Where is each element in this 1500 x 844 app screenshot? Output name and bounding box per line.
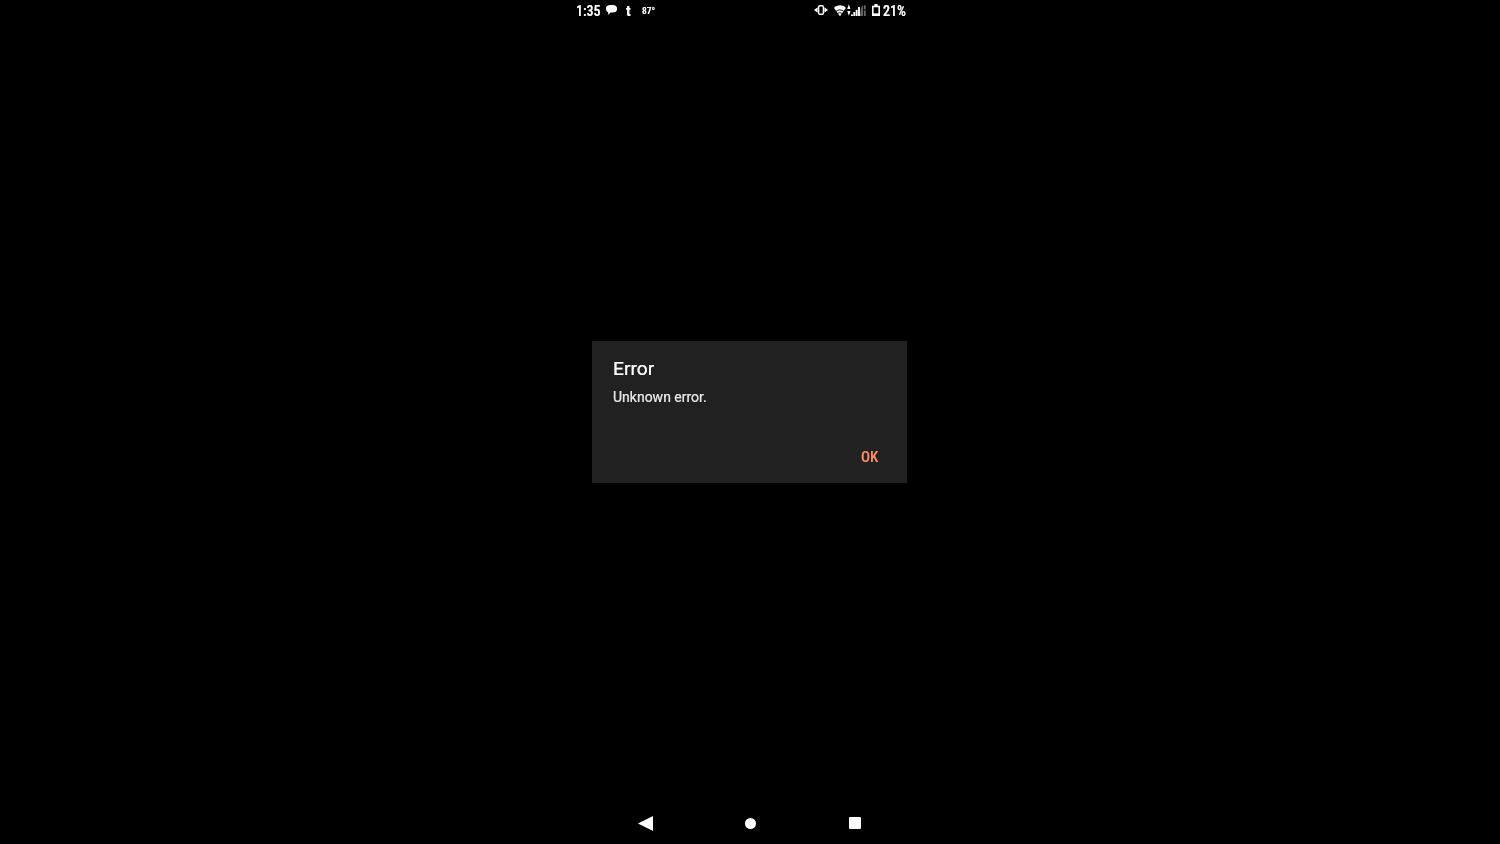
- staticText: 1:35: [576, 3, 601, 19]
- staticText: OK: [861, 448, 879, 466]
- staticText: Error: [613, 357, 655, 380]
- staticText: 21%: [883, 3, 906, 19]
- staticText: t: [626, 2, 631, 20]
- button[interactable]: Recents: [803, 796, 908, 844]
- staticText: 87°: [642, 5, 656, 16]
- staticText: Unknown error.: [613, 389, 707, 405]
- button[interactable]: OK: [853, 442, 887, 472]
- button[interactable]: Home: [698, 796, 803, 844]
- button[interactable]: Back: [593, 796, 698, 844]
